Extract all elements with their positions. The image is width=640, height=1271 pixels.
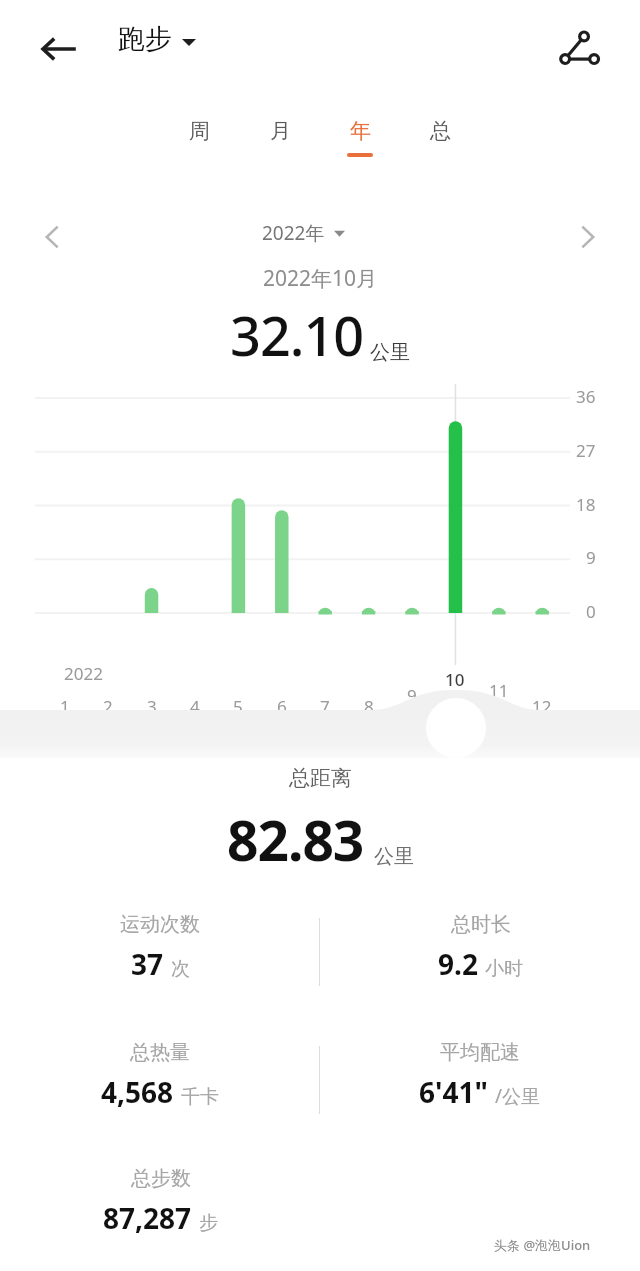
staticText: 36 (576, 385, 596, 408)
staticText: 9 (586, 546, 596, 569)
staticText: 公里 (374, 844, 414, 869)
staticText: 18 (576, 493, 596, 516)
button[interactable]: 周 (165, 112, 233, 174)
staticText: 32.10 (230, 298, 364, 372)
staticText: 年 (350, 118, 371, 144)
staticText: 11 (489, 679, 509, 702)
button[interactable]: Previous year (24, 208, 82, 266)
staticText: 9.2 (438, 945, 478, 983)
staticText: 月 (270, 118, 291, 144)
staticText: 步 (199, 1211, 218, 1235)
staticText: 4,568 (101, 1073, 174, 1111)
staticText: 总时长 (451, 912, 511, 937)
staticText: 小时 (485, 957, 523, 981)
staticText: 周 (189, 118, 210, 144)
staticText: 千卡 (181, 1085, 219, 1109)
staticText: 2022年 (262, 220, 325, 246)
staticText: 公里 (370, 340, 410, 365)
staticText: 2022 (64, 662, 103, 685)
button[interactable]: 月 (246, 112, 314, 174)
staticText: 5 (233, 695, 243, 718)
button[interactable]: 总时长 (320, 912, 640, 998)
staticText: 87,287 (103, 1199, 192, 1237)
staticText: 6 (277, 695, 287, 718)
staticText: 1 (60, 695, 70, 718)
staticText: 37 (131, 945, 164, 983)
button[interactable]: 总热量 (0, 1040, 320, 1126)
button[interactable]: Back (28, 18, 90, 80)
button[interactable]: 年 (326, 112, 394, 174)
staticText: 运动次数 (120, 912, 200, 937)
staticText: 4 (190, 695, 200, 718)
staticText: 总距离 (289, 765, 352, 791)
staticText: 8 (364, 695, 374, 718)
staticText: 头条 @泡泡Uion (494, 1236, 591, 1254)
staticText: 12 (532, 695, 552, 718)
staticText: 总步数 (131, 1166, 191, 1191)
staticText: 10 (445, 668, 465, 691)
staticText: 82.83 (227, 802, 364, 877)
button[interactable]: 运动次数 (0, 912, 320, 998)
staticText: 总热量 (130, 1040, 190, 1065)
staticText: 0 (586, 600, 596, 623)
staticText: 2 (103, 695, 113, 718)
staticText: /公里 (495, 1083, 541, 1109)
button[interactable]: 2022年 (262, 220, 345, 246)
staticText: 2022年10月 (263, 264, 378, 293)
button[interactable]: 总步数 (0, 1166, 320, 1252)
staticText: 次 (171, 957, 190, 981)
button[interactable]: 跑步 (118, 22, 196, 56)
staticText: 平均配速 (440, 1040, 520, 1065)
staticText: 跑步 (118, 22, 172, 56)
button[interactable]: Next year (558, 208, 616, 266)
staticText: 27 (576, 439, 596, 462)
staticText: 6'41" (419, 1073, 488, 1111)
staticText: 9 (407, 684, 417, 707)
button[interactable]: Share (548, 18, 610, 80)
staticText: 7 (320, 695, 330, 718)
button[interactable]: 平均配速 (320, 1040, 640, 1126)
staticText: 3 (147, 695, 157, 718)
button[interactable]: 总 (406, 112, 474, 174)
staticText: 总 (430, 118, 451, 144)
